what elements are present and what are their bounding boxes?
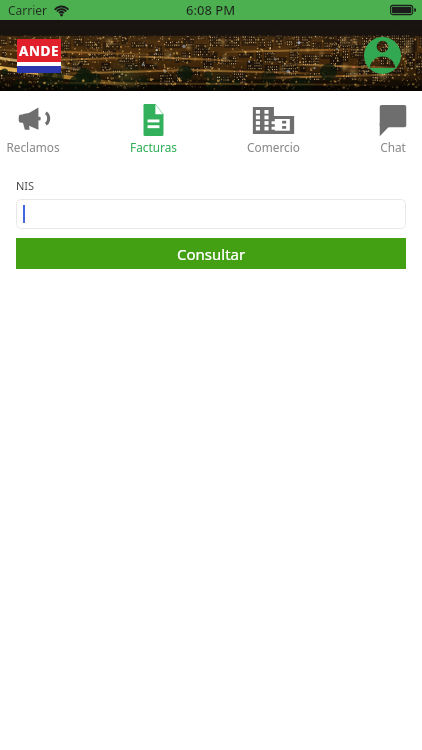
button[interactable]: Comercio — [243, 91, 303, 155]
staticText: ANDE — [19, 42, 60, 60]
button[interactable]: Reclamos — [3, 91, 63, 155]
staticText: 6:08 PM — [186, 1, 236, 19]
staticText: Comercio — [247, 139, 300, 155]
staticText: NIS — [16, 178, 35, 193]
button[interactable]: Profile — [364, 37, 401, 74]
button[interactable]: NIS input — [16, 199, 406, 229]
button[interactable]: Consultar — [16, 238, 406, 269]
button[interactable]: Facturas — [123, 91, 183, 155]
staticText: Facturas — [130, 139, 177, 155]
button[interactable]: Chat — [363, 91, 422, 155]
staticText: Chat — [380, 139, 406, 155]
staticText: Reclamos — [6, 139, 60, 155]
staticText: Carrier — [8, 2, 48, 18]
staticText: Consultar — [177, 244, 246, 264]
